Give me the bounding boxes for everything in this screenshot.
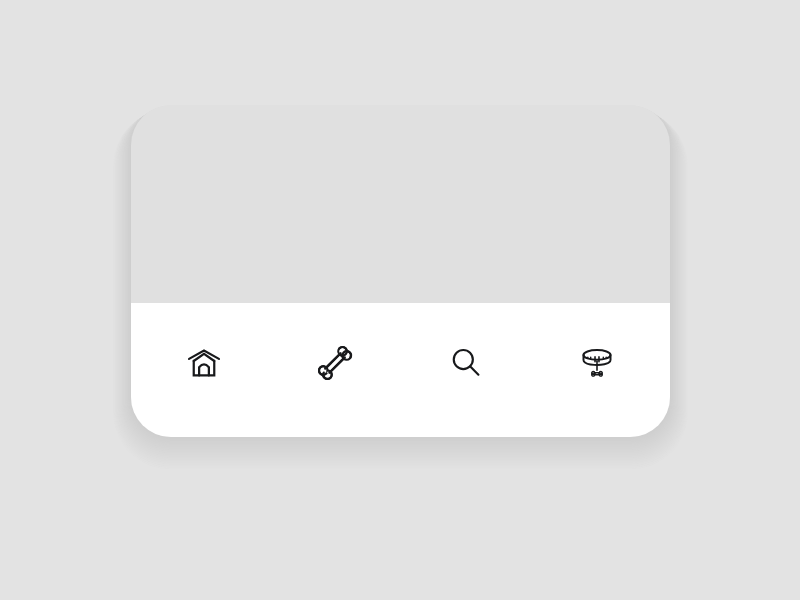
button[interactable]: Search — [408, 303, 524, 437]
button[interactable]: Home — [146, 303, 262, 437]
button[interactable]: Treats — [277, 303, 393, 437]
button[interactable]: Collar — [539, 303, 655, 437]
